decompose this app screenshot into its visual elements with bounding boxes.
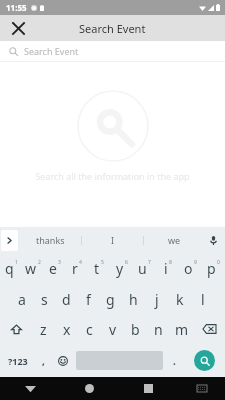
button[interactable]: Search [194, 350, 215, 371]
button[interactable]: we [144, 227, 205, 253]
button[interactable]: c [78, 314, 101, 344]
button[interactable]: u [133, 253, 156, 284]
button[interactable]: r [66, 253, 88, 284]
button[interactable]: i [156, 253, 179, 284]
staticText: n [154, 320, 163, 339]
staticText: 1 [15, 259, 18, 266]
button[interactable]: Search Event [0, 41, 225, 61]
staticText: u [138, 259, 147, 278]
button[interactable]: More suggestions [1, 230, 18, 251]
staticText: c [86, 320, 93, 339]
staticText: Search Event [24, 45, 79, 57]
staticText: g [106, 290, 115, 309]
button[interactable]: d [55, 284, 77, 314]
staticText: Search all the information in the app [0, 170, 225, 182]
button[interactable]: x [55, 314, 78, 344]
button[interactable]: t [88, 253, 110, 284]
staticText: 7 [148, 259, 151, 266]
staticText: I [111, 234, 115, 246]
button[interactable]: k [168, 284, 191, 314]
staticText: i [164, 259, 168, 278]
button[interactable]: Home [60, 377, 119, 400]
staticText: y [116, 259, 124, 278]
button[interactable]: h [122, 284, 145, 314]
staticText: l [201, 290, 205, 309]
staticText: 3 [58, 259, 61, 266]
staticText: 4 [79, 259, 82, 266]
button[interactable]: ?123 [0, 344, 35, 377]
button[interactable]: , [35, 344, 52, 377]
button[interactable]: m [170, 314, 193, 344]
staticText: 9 [194, 259, 197, 266]
button[interactable]: g [99, 284, 122, 314]
staticText: Search Event [79, 21, 146, 36]
button[interactable]: v [101, 314, 124, 344]
staticText: j [155, 290, 159, 309]
staticText: 11:55 [6, 2, 27, 13]
staticText: f [86, 290, 91, 309]
button[interactable]: Voice input [205, 232, 221, 248]
button[interactable]: Back [0, 377, 60, 400]
staticText: 5 [101, 259, 104, 266]
staticText: k [176, 290, 184, 309]
button[interactable]: I [82, 227, 143, 253]
staticText: b [131, 320, 140, 339]
button[interactable]: j [145, 284, 168, 314]
staticText: q [5, 259, 14, 278]
button[interactable]: Emoji [52, 344, 74, 377]
button[interactable]: e [44, 253, 66, 284]
button[interactable]: Recents [119, 377, 178, 400]
staticText: o [184, 259, 193, 278]
button[interactable]: w [22, 253, 44, 284]
button[interactable]: Switch keyboard [178, 377, 225, 400]
staticText: d [62, 290, 71, 309]
staticText: h [129, 290, 138, 309]
staticText: . [173, 354, 176, 368]
button[interactable]: l [191, 284, 214, 314]
button[interactable]: o [179, 253, 202, 284]
staticText: x [63, 320, 71, 339]
button[interactable]: Backspace [193, 314, 225, 344]
button[interactable]: . [165, 344, 184, 377]
staticText: s [41, 290, 48, 309]
button[interactable]: s [33, 284, 55, 314]
staticText: m [175, 320, 189, 339]
staticText: z [40, 320, 47, 339]
staticText: thanks [36, 234, 65, 246]
staticText: e [49, 259, 57, 278]
button[interactable]: p [202, 253, 225, 284]
button[interactable]: a [11, 284, 33, 314]
staticText: 8 [169, 259, 172, 266]
staticText: r [72, 259, 78, 278]
staticText: , [42, 354, 45, 368]
button[interactable]: n [147, 314, 170, 344]
staticText: a [18, 290, 26, 309]
staticText: w [25, 259, 37, 278]
staticText: 6 [125, 259, 128, 266]
button[interactable]: b [124, 314, 147, 344]
staticText: we [168, 234, 181, 246]
button[interactable]: Close [8, 18, 28, 38]
staticText: 0 [217, 259, 220, 266]
button[interactable]: f [77, 284, 99, 314]
staticText: 2 [38, 259, 41, 266]
button[interactable]: z [32, 314, 55, 344]
button[interactable]: Shift [0, 314, 32, 344]
button[interactable]: thanks [20, 227, 81, 253]
button[interactable]: y [110, 253, 133, 284]
staticText: t [94, 259, 100, 278]
staticText: p [207, 259, 216, 278]
staticText: v [109, 320, 117, 339]
staticText: ?123 [8, 355, 28, 367]
button[interactable]: q [0, 253, 22, 284]
